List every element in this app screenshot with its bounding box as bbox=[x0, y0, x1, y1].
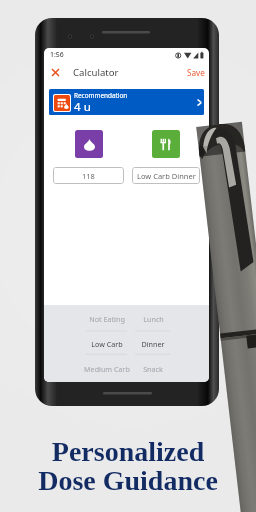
staticText: Personalized Dose Guidance bbox=[38, 436, 218, 496]
staticText: Low Carb bbox=[91, 339, 123, 349]
button[interactable]: Snack bbox=[127, 358, 179, 380]
button[interactable]: Close bbox=[47, 64, 64, 81]
button[interactable]: Blood glucose bbox=[75, 130, 103, 158]
staticText: 1:56 bbox=[50, 50, 64, 59]
button[interactable]: Medium Carb bbox=[81, 358, 133, 380]
button[interactable]: Low Carb Dinner bbox=[132, 167, 200, 184]
button[interactable]: Meal bbox=[152, 130, 180, 158]
staticText: Low Carb Dinner bbox=[137, 171, 196, 181]
button[interactable]: Calculator bbox=[73, 65, 119, 80]
staticText: Save bbox=[187, 67, 205, 78]
button[interactable]: Not Eating bbox=[81, 308, 133, 330]
button[interactable]: Lunch bbox=[127, 308, 179, 330]
staticText: Not Eating bbox=[89, 314, 125, 324]
staticText: Dinner bbox=[141, 339, 165, 349]
staticText: Snack bbox=[143, 364, 163, 374]
button[interactable]: Save bbox=[185, 65, 206, 80]
staticText: Recommendation bbox=[74, 91, 128, 100]
button[interactable]: 118 bbox=[53, 167, 124, 184]
button[interactable]: Recommendation bbox=[49, 89, 204, 115]
button[interactable]: Low Carb bbox=[81, 333, 133, 355]
staticText: 118 bbox=[82, 171, 95, 181]
button[interactable]: Dinner bbox=[127, 333, 179, 355]
staticText: 4 u bbox=[74, 99, 91, 115]
staticText: Calculator bbox=[73, 66, 119, 79]
staticText: Lunch bbox=[143, 314, 164, 324]
staticText: Medium Carb bbox=[84, 364, 130, 374]
